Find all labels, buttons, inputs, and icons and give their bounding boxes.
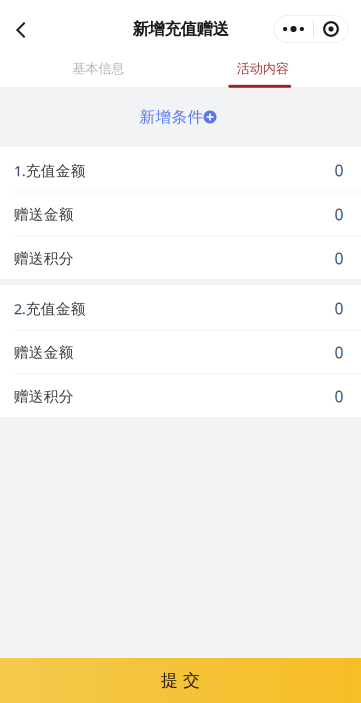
staticText: 提 交 — [161, 670, 200, 691]
staticText: 0 — [334, 342, 343, 363]
button[interactable]: 1.充值金额 — [0, 147, 361, 191]
staticText: 新增条件 — [139, 107, 203, 127]
button[interactable]: 赠送金额 — [0, 329, 361, 373]
staticText: 赠送金额 — [14, 343, 74, 362]
button[interactable]: 基本信息 — [16, 58, 180, 87]
button[interactable]: 新增条件 — [0, 87, 361, 147]
button[interactable]: 赠送金额 — [0, 191, 361, 235]
staticText: 基本信息 — [72, 60, 124, 77]
staticText: 2.充值金额 — [14, 298, 86, 318]
button[interactable]: Back — [0, 0, 42, 58]
button[interactable]: 提 交 — [0, 658, 361, 703]
staticText: 0 — [334, 298, 343, 319]
button[interactable]: 赠送积分 — [0, 373, 361, 417]
staticText: 赠送金额 — [14, 205, 74, 224]
staticText: 1.充值金额 — [14, 160, 86, 180]
staticText: 0 — [334, 204, 343, 225]
button[interactable]: 2.充值金额 — [0, 285, 361, 329]
staticText: 赠送积分 — [14, 249, 74, 268]
staticText: 0 — [334, 160, 343, 181]
button[interactable]: More options — [274, 15, 348, 42]
staticText: 赠送积分 — [14, 387, 74, 406]
staticText: 新增充值赠送 — [132, 19, 228, 39]
button[interactable]: 赠送积分 — [0, 235, 361, 279]
staticText: 0 — [334, 386, 343, 407]
staticText: 活动内容 — [237, 60, 289, 77]
staticText: 0 — [334, 248, 343, 269]
button[interactable]: 活动内容 — [180, 58, 345, 87]
